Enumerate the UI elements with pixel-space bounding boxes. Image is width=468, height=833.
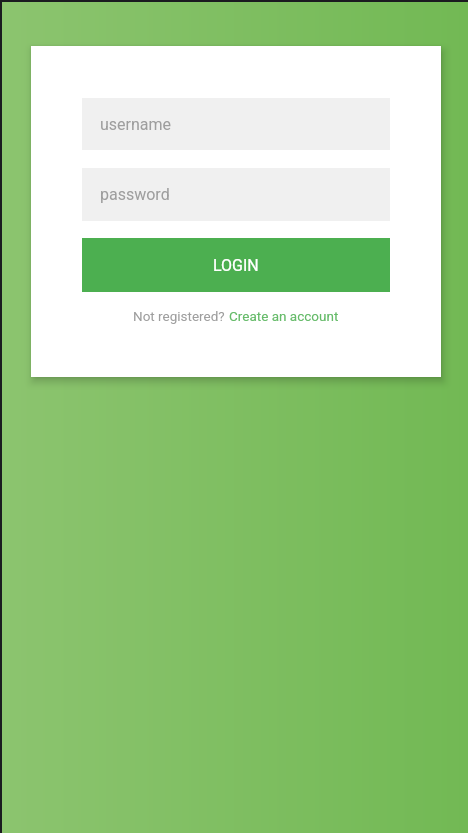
staticText: LOGIN [213,256,259,275]
button[interactable]: Create an account [229,308,339,324]
staticText: Create an account [229,308,339,324]
button[interactable]: password [82,168,390,221]
staticText: Not registered? [133,308,229,324]
button[interactable]: LOGIN [82,238,390,292]
staticText: password [100,185,170,204]
staticText: username [100,115,172,134]
button[interactable]: username [82,98,390,150]
